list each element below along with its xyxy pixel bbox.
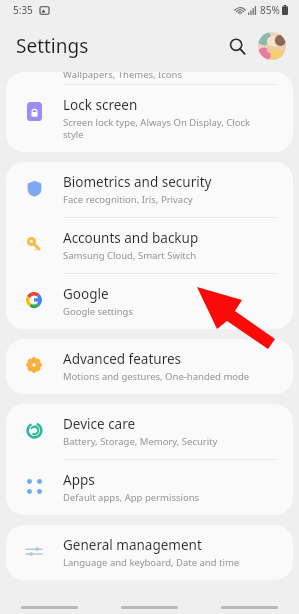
staticText: Device care: [63, 415, 136, 433]
staticText: General management: [63, 536, 202, 554]
staticText: Lock screen: [63, 96, 138, 114]
staticText: Default apps, App permissions: [63, 491, 200, 504]
button[interactable]: Home: [99, 600, 199, 614]
staticText: Language and keyboard, Date and time: [63, 556, 240, 569]
button[interactable]: Google: [6, 274, 293, 329]
button[interactable]: Apps: [6, 460, 293, 515]
button[interactable]: Device care: [6, 404, 293, 459]
button[interactable]: Account: [258, 32, 286, 60]
staticText: 5:35: [13, 3, 33, 17]
staticText: Google settings: [63, 305, 134, 318]
staticText: Advanced features: [63, 350, 182, 368]
staticText: Google: [63, 285, 109, 303]
button[interactable]: Biometrics and security: [6, 162, 293, 217]
button[interactable]: Lock screen: [6, 85, 293, 152]
button[interactable]: Advanced features: [6, 339, 293, 394]
button[interactable]: Search: [222, 31, 252, 61]
staticText: Samsung Cloud, Smart Switch: [63, 249, 197, 262]
button[interactable]: Back: [199, 600, 299, 614]
staticText: Screen lock type, Always On Display, Clo…: [63, 116, 251, 141]
staticText: Accounts and backup: [63, 229, 199, 247]
staticText: Settings: [16, 33, 89, 59]
staticText: Biometrics and security: [63, 173, 212, 191]
button[interactable]: Accounts and backup: [6, 218, 293, 273]
staticText: Motions and gestures, One-handed mode: [63, 370, 250, 383]
staticText: Wallpapers, Themes, Icons: [63, 72, 183, 80]
staticText: Face recognition, Iris, Privacy: [63, 193, 193, 206]
button[interactable]: Recents: [0, 600, 99, 614]
staticText: Apps: [63, 471, 95, 489]
staticText: Battery, Storage, Memory, Security: [63, 435, 218, 448]
button[interactable]: General management: [6, 525, 293, 580]
staticText: 85%: [260, 3, 280, 17]
